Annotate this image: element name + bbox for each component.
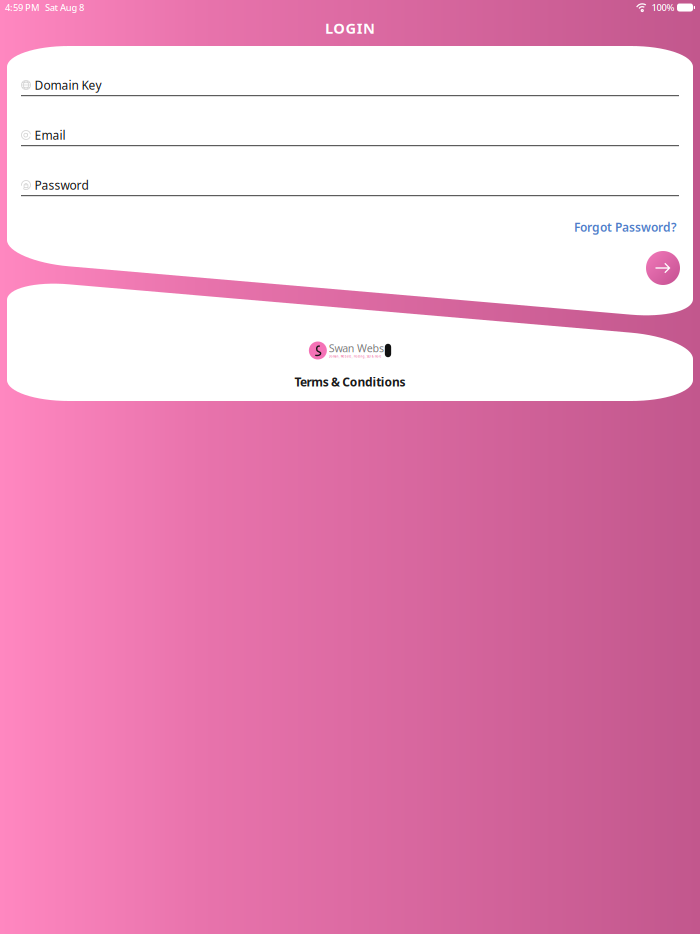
staticText: Email [34, 127, 65, 143]
button[interactable]: Forgot Password? [572, 219, 679, 235]
staticText: Sat Aug 8 [45, 1, 84, 14]
staticText: 100% [651, 1, 674, 14]
staticText: Swan Webs [329, 341, 384, 355]
staticText: Terms & Conditions [294, 374, 406, 390]
staticText: Domain, Website, Hosting, SEO & more [329, 355, 382, 358]
button[interactable]: Continue [646, 251, 680, 285]
staticText: Password [34, 177, 88, 193]
button[interactable]: Terms & Conditions [290, 374, 410, 390]
staticText: Forgot Password? [574, 219, 677, 235]
staticText: 4:59 PM [5, 1, 40, 14]
staticText: Domain Key [34, 77, 101, 93]
staticText: LOGIN [325, 18, 375, 38]
button[interactable]: Domain Key [21, 78, 679, 96]
button[interactable]: Password [21, 178, 679, 196]
button[interactable]: Email [21, 128, 679, 146]
